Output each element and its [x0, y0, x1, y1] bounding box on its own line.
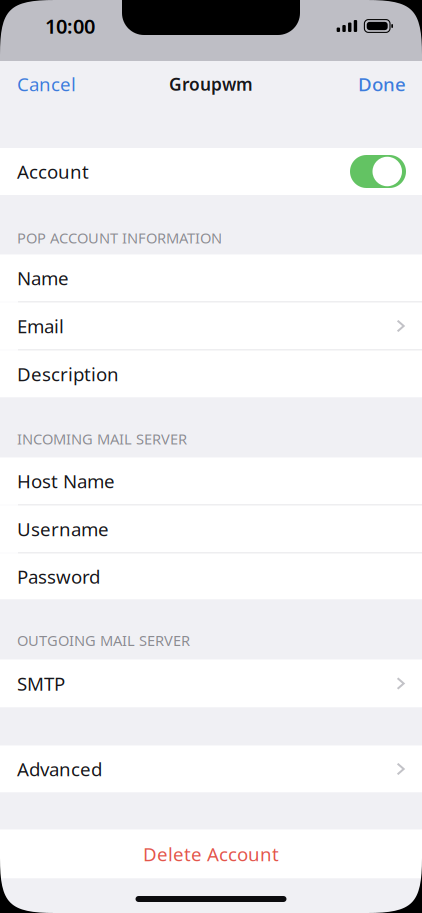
staticText: INCOMING MAIL SERVER — [17, 429, 187, 448]
staticText: Account — [17, 159, 89, 184]
staticText: Username — [17, 517, 109, 541]
button[interactable]: Account — [0, 148, 422, 195]
staticText: Name — [17, 266, 69, 290]
button[interactable]: Host Name — [0, 457, 422, 504]
button[interactable]: Delete Account — [0, 829, 422, 878]
button[interactable]: Description — [0, 350, 422, 397]
button[interactable]: Advanced — [0, 745, 422, 792]
staticText: 10:00 — [45, 13, 95, 39]
staticText: POP ACCOUNT INFORMATION — [17, 228, 222, 247]
staticText: Done — [358, 72, 406, 96]
button[interactable]: Cancel — [0, 61, 90, 107]
button[interactable]: Done — [344, 61, 422, 107]
button[interactable]: SMTP — [0, 659, 422, 707]
staticText: Password — [17, 564, 100, 589]
staticText: Description — [17, 362, 119, 386]
staticText: SMTP — [17, 671, 65, 696]
button[interactable]: Username — [0, 505, 422, 552]
staticText: OUTGOING MAIL SERVER — [17, 630, 190, 650]
staticText: Advanced — [17, 757, 102, 781]
staticText: Cancel — [17, 72, 76, 96]
button[interactable]: Email — [0, 302, 422, 349]
staticText: Groupwm — [169, 72, 253, 95]
button[interactable]: Name — [0, 254, 422, 301]
staticText: Host Name — [17, 469, 115, 493]
staticText: Email — [17, 314, 64, 338]
button[interactable]: Password — [0, 553, 422, 599]
staticText: Delete Account — [143, 842, 279, 866]
